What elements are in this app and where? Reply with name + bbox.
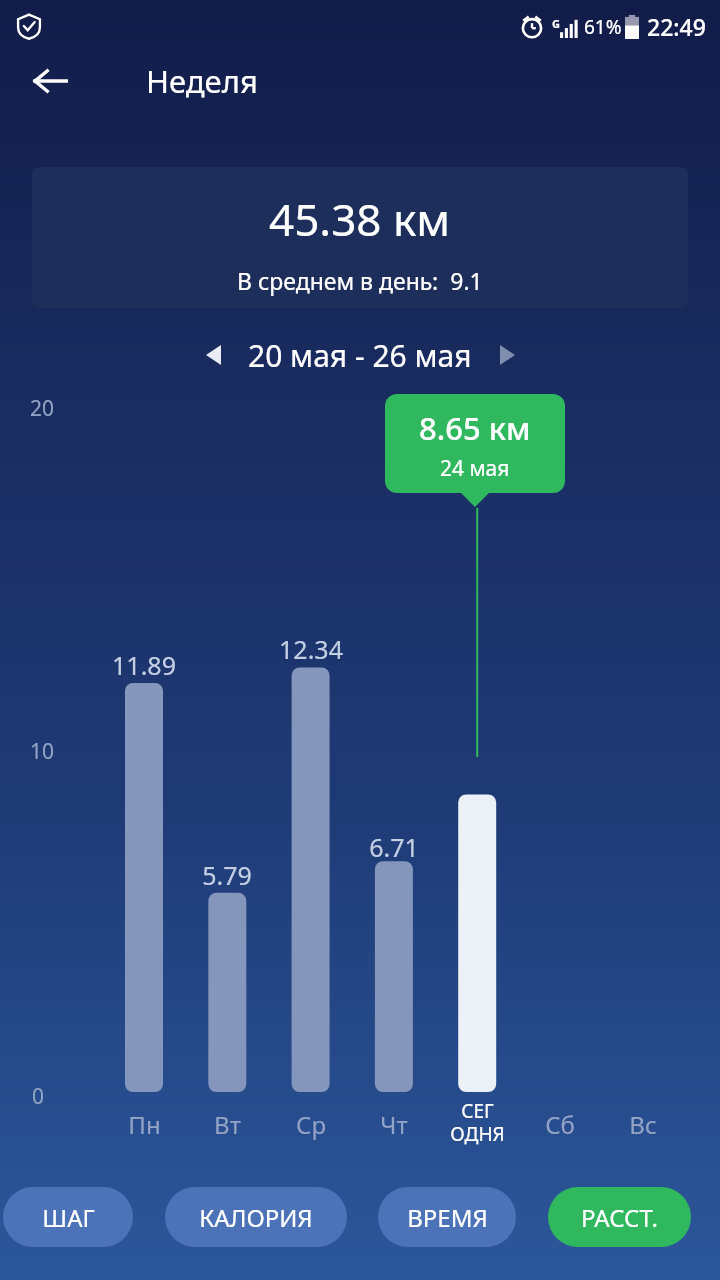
staticText: 45.38 км <box>269 189 451 249</box>
staticText: КАЛОРИЯ <box>199 1201 313 1234</box>
staticText: 0 <box>32 1082 45 1111</box>
staticText: 10 <box>30 737 55 766</box>
staticText: 6.71 <box>369 830 419 864</box>
button[interactable]: КАЛОРИЯ <box>165 1187 347 1247</box>
staticText: ШАГ <box>42 1201 95 1234</box>
staticText: Пн <box>128 1108 161 1141</box>
button[interactable]: 8.65 км <box>385 394 565 493</box>
button[interactable]: Back <box>24 55 76 107</box>
staticText: 8.65 км <box>419 407 531 449</box>
staticText: Ср <box>296 1108 326 1141</box>
staticText: Неделя <box>146 60 258 102</box>
staticText: СЕГ ОДНЯ <box>450 1098 505 1147</box>
staticText: 24 мая <box>440 454 510 483</box>
button[interactable]: РАССТ. <box>548 1187 691 1247</box>
button[interactable]: 45.38 км <box>32 167 688 308</box>
staticText: 11.89 <box>112 648 176 682</box>
staticText: Вт <box>214 1108 241 1141</box>
staticText: Чт <box>380 1108 408 1141</box>
staticText: 61% <box>584 14 622 40</box>
staticText: 12.34 <box>279 632 343 666</box>
button[interactable]: ВРЕМЯ <box>378 1187 516 1247</box>
staticText: 20 мая - 26 мая <box>248 335 472 376</box>
staticText: В среднем в день: 9.1 <box>237 265 483 296</box>
staticText: ВРЕМЯ <box>407 1201 488 1234</box>
staticText: 20 <box>30 394 55 423</box>
staticText: 5.79 <box>202 858 252 892</box>
button[interactable]: Next week <box>484 332 530 378</box>
staticText: Вс <box>629 1108 657 1141</box>
button[interactable]: Previous week <box>190 332 236 378</box>
button[interactable]: ШАГ <box>3 1187 133 1247</box>
staticText: РАССТ. <box>581 1201 658 1234</box>
staticText: Сб <box>545 1108 575 1141</box>
staticText: 22:49 <box>647 11 706 42</box>
staticText: G <box>552 16 560 31</box>
